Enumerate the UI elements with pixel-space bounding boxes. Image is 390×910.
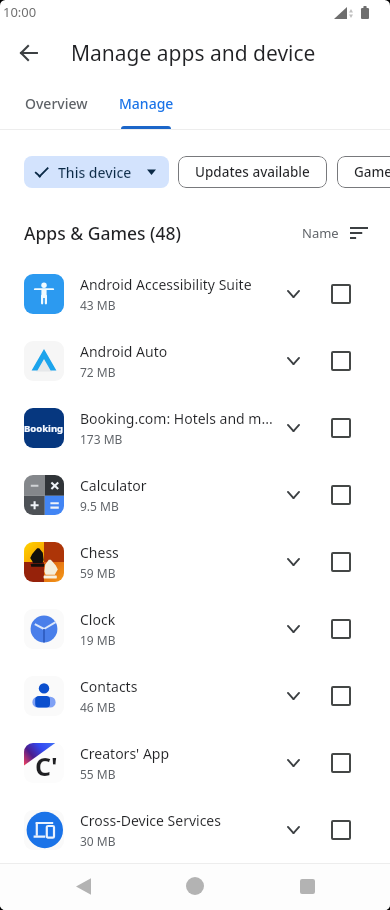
staticText: C': [35, 749, 58, 783]
staticText: This device: [58, 163, 132, 182]
staticText: Chess: [80, 543, 119, 562]
staticText: 19 MB: [80, 632, 116, 648]
button[interactable]: Expand details: [272, 675, 314, 717]
staticText: Manage apps and device: [71, 39, 316, 68]
staticText: Creators' App: [80, 744, 170, 763]
staticText: Games: [354, 163, 390, 181]
staticText: Overview: [25, 94, 88, 113]
staticText: Apps & Games (48): [24, 221, 182, 245]
button[interactable]: Home: [171, 863, 219, 909]
button[interactable]: Clock: [0, 595, 390, 662]
button[interactable]: Booking: [0, 394, 390, 461]
button[interactable]: Contacts: [0, 662, 390, 729]
button[interactable]: Select app: [321, 743, 361, 783]
button[interactable]: Select app: [321, 341, 361, 381]
staticText: 55 MB: [80, 766, 116, 782]
button[interactable]: Expand details: [272, 742, 314, 784]
staticText: 173 MB: [80, 431, 123, 447]
staticText: Contacts: [80, 677, 138, 696]
button[interactable]: Select app: [321, 676, 361, 716]
staticText: Cross-Device Services: [80, 811, 221, 830]
staticText: 30 MB: [80, 833, 116, 849]
button[interactable]: Recent apps: [283, 863, 331, 909]
staticText: 72 MB: [80, 364, 116, 380]
button[interactable]: Expand details: [272, 608, 314, 650]
button[interactable]: Cross-Device Services: [0, 796, 390, 863]
button[interactable]: Expand details: [272, 407, 314, 449]
staticText: Booking.com: Hotels and m...: [80, 409, 273, 428]
button[interactable]: Select app: [321, 408, 361, 448]
button[interactable]: Select app: [321, 274, 361, 314]
button[interactable]: Select app: [321, 542, 361, 582]
button[interactable]: This device: [24, 156, 169, 188]
button[interactable]: Chess: [0, 528, 390, 595]
button[interactable]: Manage: [113, 78, 179, 129]
button[interactable]: Expand details: [272, 474, 314, 516]
button[interactable]: Updates available: [178, 156, 327, 188]
button[interactable]: Overview: [0, 78, 113, 129]
button[interactable]: Back: [59, 863, 107, 909]
button[interactable]: Expand details: [272, 809, 314, 851]
staticText: 10:00: [3, 3, 37, 21]
button[interactable]: C': [0, 729, 390, 796]
staticText: 59 MB: [80, 565, 116, 581]
button[interactable]: Expand details: [272, 273, 314, 315]
staticText: Updates available: [195, 163, 310, 181]
button[interactable]: Name: [298, 220, 372, 246]
button[interactable]: Expand details: [272, 340, 314, 382]
staticText: 9.5 MB: [80, 498, 119, 514]
staticText: Booking: [24, 422, 64, 435]
staticText: Manage: [119, 94, 174, 113]
button[interactable]: Select app: [321, 475, 361, 515]
staticText: 46 MB: [80, 699, 116, 715]
button[interactable]: Select app: [321, 810, 361, 850]
staticText: Calculator: [80, 476, 147, 495]
button[interactable]: Select app: [321, 609, 361, 649]
button[interactable]: Back: [5, 29, 53, 77]
staticText: Name: [302, 224, 339, 242]
button[interactable]: Expand details: [272, 541, 314, 583]
button[interactable]: Android Accessibility Suite: [0, 260, 390, 327]
button[interactable]: Games: [337, 156, 390, 188]
staticText: 43 MB: [80, 297, 116, 313]
button[interactable]: Calculator: [0, 461, 390, 528]
staticText: Android Auto: [80, 342, 168, 361]
staticText: Clock: [80, 610, 116, 629]
button[interactable]: Android Auto: [0, 327, 390, 394]
staticText: Android Accessibility Suite: [80, 275, 252, 294]
